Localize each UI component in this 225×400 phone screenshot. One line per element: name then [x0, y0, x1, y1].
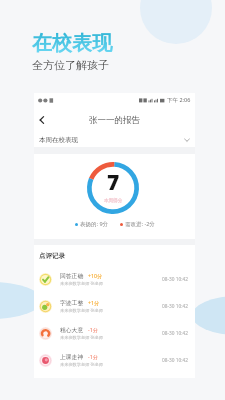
staticText: 08-30 10:42 [162, 276, 189, 283]
staticText: 来来班数学老师 张老师 [60, 362, 103, 368]
staticText: 字迹工整 [60, 299, 84, 306]
button[interactable]: Back [35, 113, 49, 127]
staticText: 在校表现 [32, 31, 112, 56]
staticText: -1分 [88, 326, 98, 333]
button[interactable]: 回答正确 [34, 266, 195, 293]
staticText: 需改进: -2分 [125, 220, 155, 228]
staticText: 08-30 10:42 [162, 330, 189, 337]
staticText: 表扬的: 9分 [80, 220, 109, 228]
staticText: 回答正确 [60, 272, 84, 279]
staticText: 下午 2:06 [167, 96, 191, 104]
staticText: 08-30 10:42 [162, 303, 189, 310]
button[interactable]: 上课走神 [34, 347, 195, 374]
staticText: 7 [107, 168, 120, 197]
staticText: 张一一的报告 [89, 115, 140, 126]
button[interactable]: 本周在校表现 [34, 133, 195, 147]
staticText: 来来班数学老师 张老师 [60, 281, 103, 287]
staticText: 全方位了解孩子 [32, 58, 109, 72]
button[interactable]: 粗心大意 [34, 320, 195, 347]
staticText: 点评记录 [39, 252, 65, 260]
staticText: 粗心大意 [60, 326, 84, 333]
staticText: 本周得分 [104, 198, 123, 204]
staticText: +10分 [88, 272, 103, 279]
staticText: 来来班数学老师 张老师 [60, 335, 103, 341]
staticText: +1分 [88, 299, 100, 306]
staticText: 上课走神 [60, 353, 84, 360]
staticText: 本周在校表现 [39, 136, 78, 144]
staticText: 来来班数学老师 张老师 [60, 308, 103, 314]
button[interactable]: 字迹工整 [34, 293, 195, 320]
staticText: 08-30 10:42 [162, 357, 189, 364]
staticText: -1分 [88, 353, 98, 360]
